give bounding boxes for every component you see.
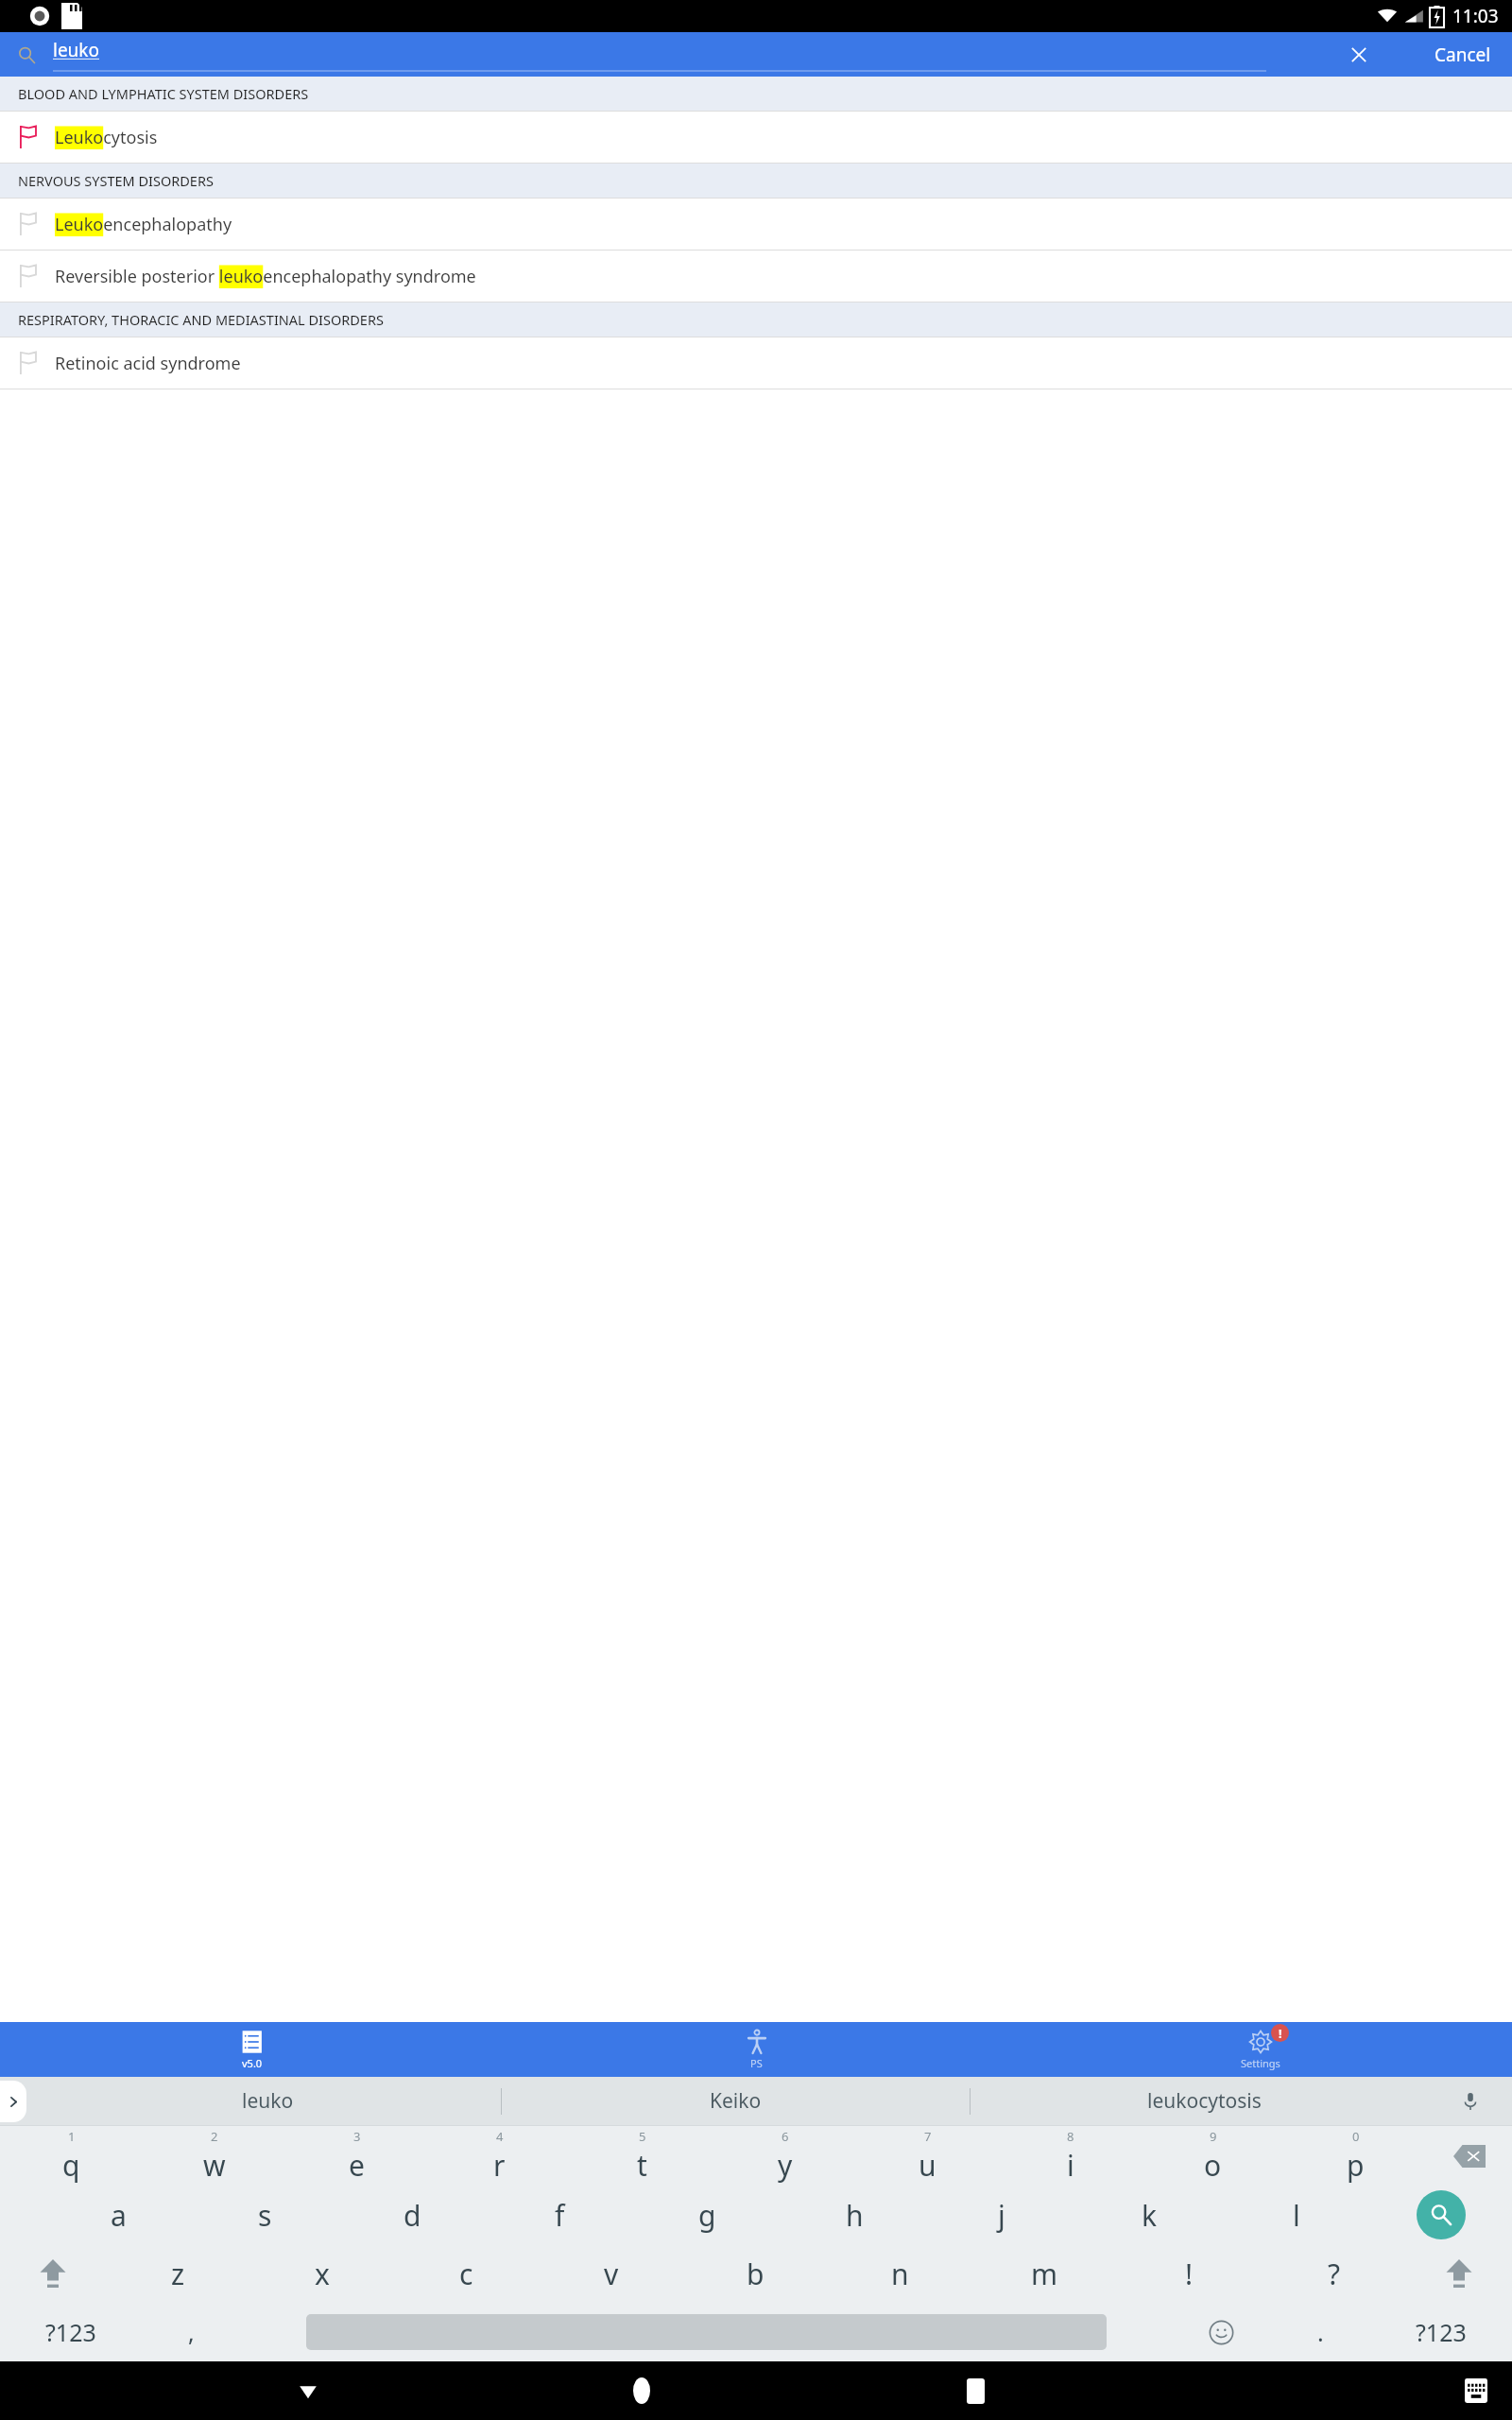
- staticText: a: [111, 2196, 127, 2235]
- staticText: 2: [211, 2128, 218, 2145]
- button[interactable]: Reversible posterior leukoencephalopathy…: [0, 251, 1512, 302]
- button[interactable]: leuko: [34, 2077, 501, 2125]
- staticText: q: [62, 2146, 80, 2185]
- button[interactable]: 8: [999, 2126, 1142, 2186]
- staticText: Reversible posterior leukoencephalopathy…: [55, 265, 476, 288]
- button[interactable]: Leukocytosis: [0, 112, 1512, 163]
- button[interactable]: Space: [241, 2303, 1172, 2361]
- staticText: 11:03: [1452, 4, 1499, 28]
- staticText: f: [555, 2196, 565, 2235]
- button[interactable]: Keyboard: [1452, 2366, 1501, 2415]
- button[interactable]: Leukoencephalopathy: [0, 199, 1512, 250]
- button[interactable]: l: [1223, 2186, 1370, 2244]
- button[interactable]: Retinoic acid syndrome: [0, 337, 1512, 389]
- staticText: Retinoic acid syndrome: [55, 352, 241, 375]
- staticText: leukocytosis: [1147, 2087, 1262, 2115]
- staticText: v: [604, 2255, 619, 2293]
- button[interactable]: Backspace: [1427, 2126, 1512, 2186]
- staticText: w: [203, 2146, 226, 2185]
- button[interactable]: h: [781, 2186, 928, 2244]
- button[interactable]: f: [486, 2186, 633, 2244]
- staticText: Cancel: [1435, 43, 1491, 67]
- button[interactable]: g: [633, 2186, 781, 2244]
- button[interactable]: b: [683, 2244, 828, 2303]
- staticText: leuko: [53, 38, 100, 62]
- button[interactable]: leukocytosis: [971, 2077, 1438, 2125]
- button[interactable]: 1: [0, 2126, 143, 2186]
- button[interactable]: c: [394, 2244, 539, 2303]
- button[interactable]: ,: [142, 2303, 241, 2361]
- button[interactable]: Shift: [0, 2244, 106, 2303]
- staticText: !: [1279, 2026, 1282, 2041]
- staticText: ,: [188, 2316, 195, 2348]
- staticText: 0: [1352, 2128, 1360, 2145]
- button[interactable]: Keiko: [502, 2077, 970, 2125]
- button[interactable]: v: [539, 2244, 683, 2303]
- staticText: 6: [782, 2128, 789, 2145]
- button[interactable]: 2: [143, 2126, 285, 2186]
- button[interactable]: PS: [505, 2022, 1008, 2077]
- button[interactable]: j: [928, 2186, 1075, 2244]
- button[interactable]: Cancel: [1427, 35, 1499, 75]
- staticText: Keiko: [710, 2087, 762, 2115]
- staticText: m: [1031, 2255, 1058, 2293]
- button[interactable]: a: [45, 2186, 192, 2244]
- staticText: e: [349, 2146, 365, 2185]
- button[interactable]: ?: [1262, 2244, 1406, 2303]
- button[interactable]: n: [828, 2244, 972, 2303]
- staticText: r: [493, 2146, 506, 2185]
- staticText: ?123: [1416, 2316, 1467, 2348]
- button[interactable]: Shift: [1406, 2244, 1512, 2303]
- button[interactable]: 0: [1284, 2126, 1427, 2186]
- staticText: y: [778, 2146, 793, 2185]
- staticText: 4: [496, 2128, 504, 2145]
- button[interactable]: 9: [1142, 2126, 1284, 2186]
- button[interactable]: .: [1271, 2303, 1370, 2361]
- staticText: c: [459, 2255, 473, 2293]
- staticText: ?123: [45, 2316, 96, 2348]
- staticText: BLOOD AND LYMPHATIC SYSTEM DISORDERS: [18, 84, 309, 103]
- button[interactable]: m: [972, 2244, 1117, 2303]
- staticText: b: [747, 2255, 765, 2293]
- button[interactable]: v5.0: [0, 2022, 505, 2077]
- button[interactable]: 4: [428, 2126, 571, 2186]
- button[interactable]: Voice input: [1452, 2083, 1489, 2120]
- button[interactable]: s: [192, 2186, 338, 2244]
- button[interactable]: Emoji: [1172, 2303, 1271, 2361]
- staticText: t: [637, 2146, 647, 2185]
- staticText: Leukocytosis: [55, 126, 158, 149]
- staticText: Settings: [1241, 2056, 1280, 2070]
- button[interactable]: d: [338, 2186, 486, 2244]
- button[interactable]: More suggestions: [0, 2081, 26, 2122]
- staticText: 9: [1210, 2128, 1217, 2145]
- staticText: .: [1317, 2316, 1324, 2348]
- button[interactable]: Search: [8, 36, 45, 74]
- button[interactable]: 3: [285, 2126, 428, 2186]
- staticText: !: [1185, 2255, 1194, 2293]
- staticText: Leukoencephalopathy: [55, 213, 232, 236]
- button[interactable]: z: [106, 2244, 249, 2303]
- staticText: d: [404, 2196, 421, 2235]
- staticText: n: [891, 2255, 909, 2293]
- button[interactable]: !: [1117, 2244, 1262, 2303]
- staticText: NERVOUS SYSTEM DISORDERS: [18, 171, 214, 190]
- staticText: RESPIRATORY, THORACIC AND MEDIASTINAL DI…: [18, 310, 384, 329]
- button[interactable]: Recents: [949, 2364, 1002, 2417]
- button[interactable]: Search: [1370, 2186, 1512, 2244]
- staticText: p: [1347, 2146, 1365, 2185]
- button[interactable]: Clear: [1338, 34, 1380, 76]
- staticText: s: [258, 2196, 272, 2235]
- button[interactable]: ?123: [0, 2303, 142, 2361]
- staticText: h: [846, 2196, 864, 2235]
- button[interactable]: 7: [856, 2126, 999, 2186]
- staticText: g: [698, 2196, 716, 2235]
- button[interactable]: Home: [615, 2364, 668, 2417]
- button[interactable]: k: [1075, 2186, 1223, 2244]
- staticText: ?: [1328, 2255, 1341, 2293]
- button[interactable]: x: [249, 2244, 394, 2303]
- button[interactable]: 5: [571, 2126, 713, 2186]
- button[interactable]: 6: [713, 2126, 856, 2186]
- button[interactable]: ?123: [1370, 2303, 1512, 2361]
- button[interactable]: Back: [282, 2364, 335, 2417]
- button[interactable]: !: [1008, 2022, 1512, 2077]
